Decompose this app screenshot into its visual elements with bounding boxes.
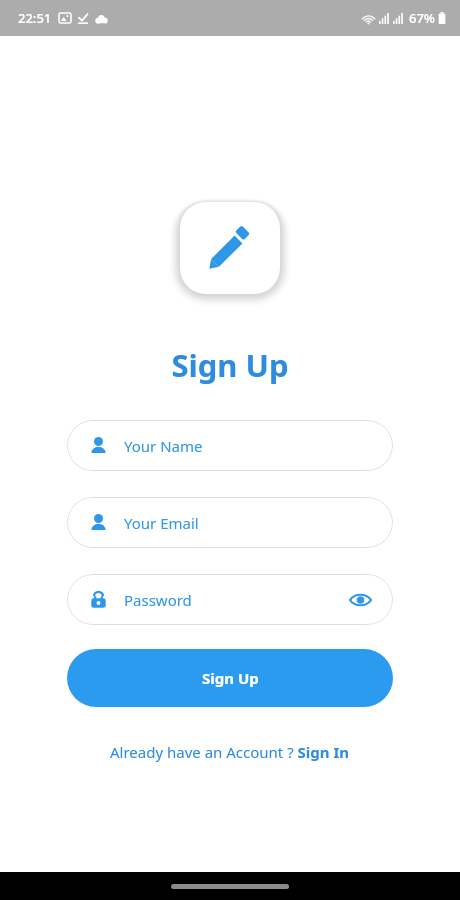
button[interactable]: Already have an Account ? Sign In	[102, 738, 358, 766]
button[interactable]: Show password	[347, 587, 373, 613]
staticText: 67%	[409, 9, 435, 27]
button[interactable]: Your Email	[67, 497, 393, 548]
staticText: 22:51	[18, 9, 52, 27]
staticText: Your Email	[124, 513, 373, 533]
staticText: Already have an Account ? Sign In	[110, 742, 350, 762]
staticText: Sign Up	[171, 344, 289, 386]
button[interactable]: Edit	[180, 202, 280, 294]
staticText: Sign Up	[202, 668, 259, 688]
button[interactable]: Sign Up	[67, 649, 393, 707]
button[interactable]: Password	[67, 574, 393, 625]
button[interactable]: Your Name	[67, 420, 393, 471]
staticText: Your Name	[124, 436, 373, 456]
staticText: Password	[124, 590, 347, 610]
button[interactable]: Home	[171, 884, 289, 889]
